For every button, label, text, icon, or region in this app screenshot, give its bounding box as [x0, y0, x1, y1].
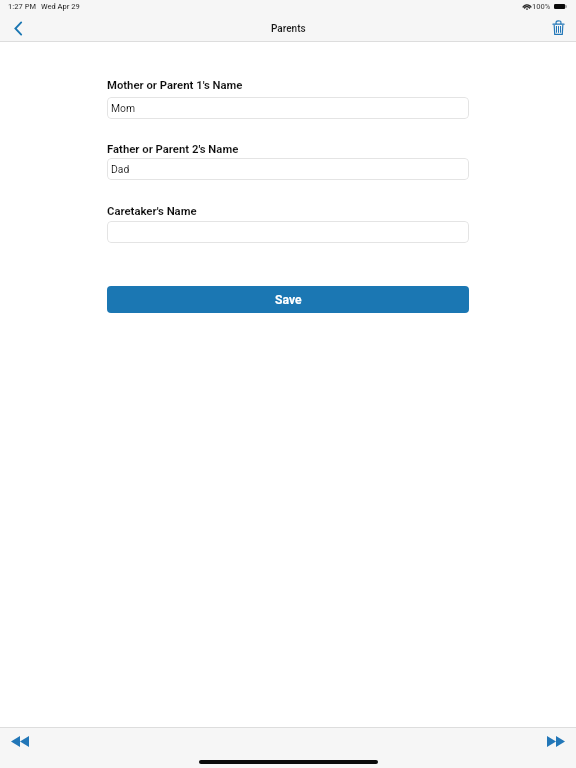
button[interactable] — [107, 221, 469, 243]
staticText: 1:27 PM — [8, 2, 36, 11]
staticText: Save — [275, 293, 302, 307]
staticText: Mother or Parent 1's Name — [107, 79, 243, 92]
staticText: Dad — [111, 163, 130, 175]
button[interactable]: Mom — [107, 97, 469, 119]
staticText: Wed Apr 29 — [41, 2, 80, 11]
button[interactable]: Dad — [107, 158, 469, 180]
staticText: Father or Parent 2's Name — [107, 143, 239, 156]
staticText: 100% — [532, 2, 551, 11]
button[interactable]: Previous — [2, 731, 38, 751]
button[interactable]: Delete — [540, 14, 576, 41]
button[interactable]: Back — [0, 15, 36, 42]
button[interactable]: Next — [538, 731, 574, 751]
staticText: Parents — [271, 23, 306, 35]
staticText: Mom — [111, 102, 136, 114]
button[interactable]: Save — [107, 286, 469, 313]
staticText: Caretaker's Name — [107, 205, 197, 218]
